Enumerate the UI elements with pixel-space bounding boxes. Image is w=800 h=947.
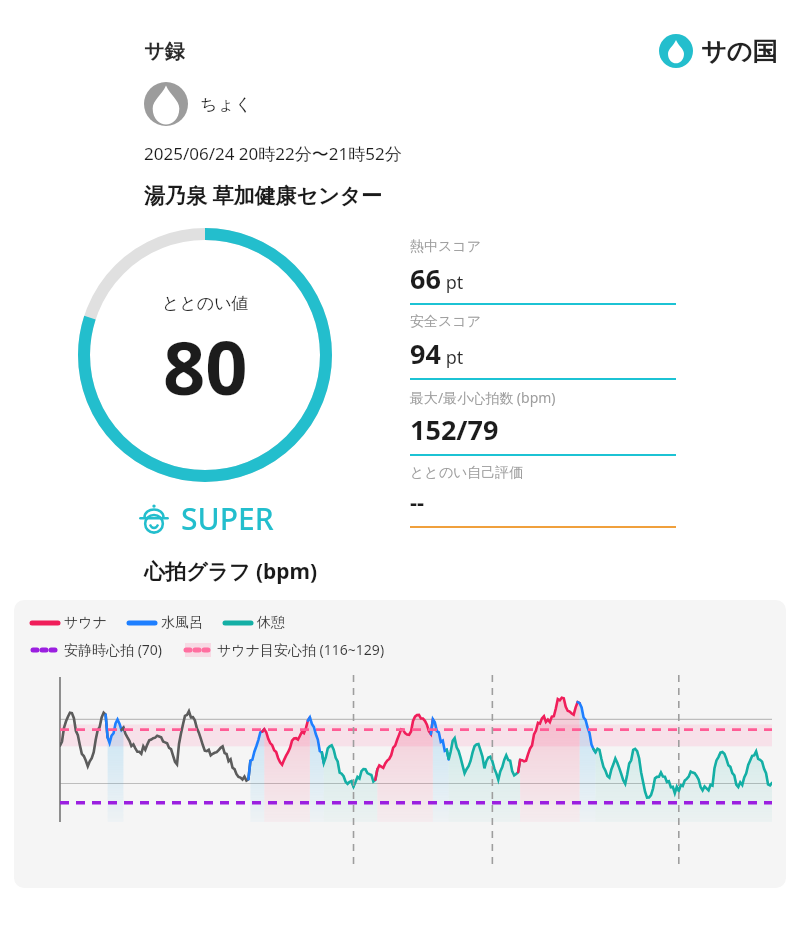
staticText: --	[410, 486, 425, 516]
staticText: サウナ目安心拍 (116~129)	[217, 640, 385, 659]
staticText: サ録	[144, 39, 185, 64]
staticText: サの国	[701, 36, 778, 67]
staticText: 安静時心拍 (70)	[64, 640, 163, 659]
staticText: サウナ	[64, 614, 107, 632]
staticText: 152/79	[410, 411, 499, 448]
staticText: 最大/最小心拍数 (bpm)	[410, 388, 556, 407]
staticText: 80	[163, 316, 248, 417]
staticText: 熱中スコア	[410, 238, 481, 256]
staticText: pt	[441, 345, 464, 370]
staticText: 休憩	[257, 614, 285, 632]
staticText: 安全スコア	[410, 313, 481, 331]
staticText: 94	[410, 335, 441, 372]
button[interactable]: サの国 ロゴ	[659, 34, 778, 68]
staticText: ちょく	[200, 94, 253, 115]
staticText: ととのい値	[162, 293, 249, 314]
staticText: pt	[441, 270, 464, 295]
staticText: 湯乃泉 草加健康センター	[144, 181, 382, 210]
button[interactable]: SUPER	[137, 498, 274, 539]
staticText: SUPER	[181, 498, 274, 539]
button[interactable]: 安全スコア	[410, 305, 676, 380]
staticText: 心拍グラフ (bpm)	[144, 557, 318, 586]
staticText: 66	[410, 260, 441, 297]
button[interactable]: 熱中スコア	[410, 230, 676, 305]
staticText: ととのい自己評価	[410, 464, 524, 482]
staticText: 水風呂	[161, 614, 203, 632]
staticText: 2025/06/24 20時22分〜21時52分	[144, 142, 402, 165]
button[interactable]: 最大/最小心拍数 (bpm)	[410, 380, 676, 456]
button[interactable]: ととのい値	[76, 226, 334, 484]
button[interactable]: ととのい自己評価	[410, 456, 676, 528]
button[interactable]: ちょく	[144, 82, 253, 126]
button[interactable]: サウナ	[14, 600, 786, 888]
